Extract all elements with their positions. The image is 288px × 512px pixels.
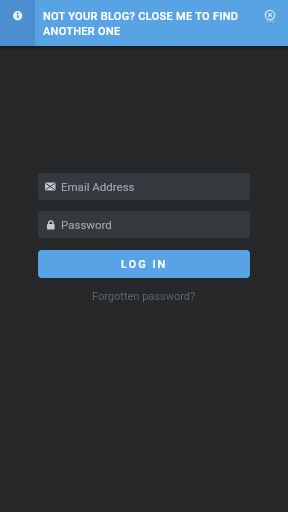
staticText: Email Address bbox=[61, 180, 135, 193]
staticText: ANOTHER ONE bbox=[43, 25, 121, 38]
button[interactable] bbox=[263, 8, 279, 24]
button[interactable]: Email Address bbox=[38, 173, 250, 200]
staticText: NOT YOUR BLOG? CLOSE ME TO FIND bbox=[43, 10, 239, 23]
staticText: Forgotten password? bbox=[92, 290, 196, 303]
button[interactable]: NOT YOUR BLOG? CLOSE ME TO FIND bbox=[0, 0, 288, 46]
button[interactable]: Password bbox=[38, 211, 250, 238]
staticText: Password bbox=[61, 218, 112, 231]
staticText: LOG IN bbox=[121, 258, 168, 271]
button[interactable]: LOG IN bbox=[38, 250, 250, 278]
button[interactable]: Forgotten password? bbox=[92, 290, 196, 303]
